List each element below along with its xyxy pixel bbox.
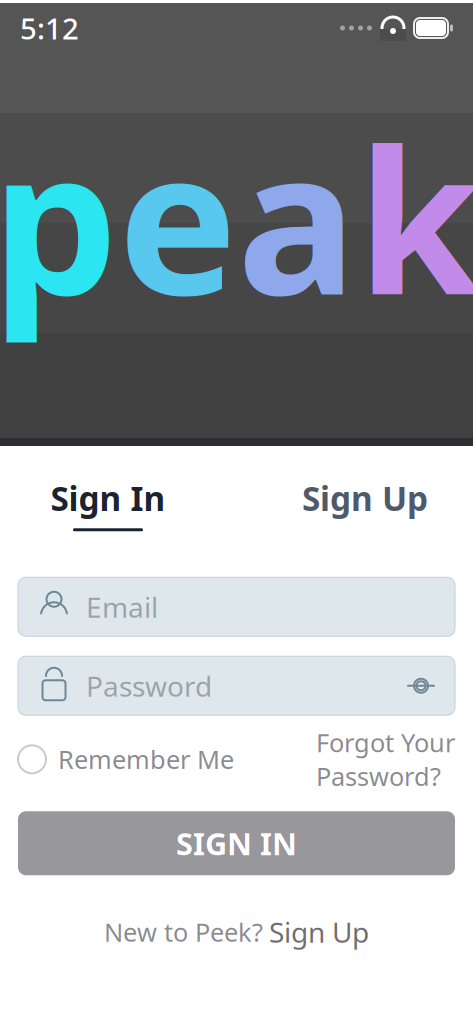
button[interactable]: Show password (401, 666, 441, 706)
staticText: Password (86, 667, 212, 704)
staticText: SIGN IN (176, 823, 297, 864)
staticText: a (237, 84, 357, 350)
staticText: Sign Up (302, 476, 428, 520)
button[interactable]: Sign Up (275, 476, 455, 531)
staticText: p (0, 84, 118, 350)
button[interactable]: Remember Me (18, 742, 234, 776)
staticText: New to Peek? (104, 915, 263, 949)
button[interactable]: SIGN IN (18, 811, 455, 875)
button[interactable]: New to Peek? (104, 913, 369, 950)
staticText: Email (86, 588, 158, 625)
staticText: e (118, 84, 237, 350)
staticText: k (357, 84, 473, 350)
staticText: Sign Up (269, 913, 369, 950)
staticText: Forgot Your Password? (316, 726, 455, 793)
staticText: 5:12 (20, 8, 79, 47)
button[interactable]: Forgot Your Password? (316, 726, 455, 793)
staticText: Remember Me (58, 742, 234, 776)
staticText: Sign In (50, 476, 165, 520)
button[interactable]: Sign In (18, 476, 198, 531)
